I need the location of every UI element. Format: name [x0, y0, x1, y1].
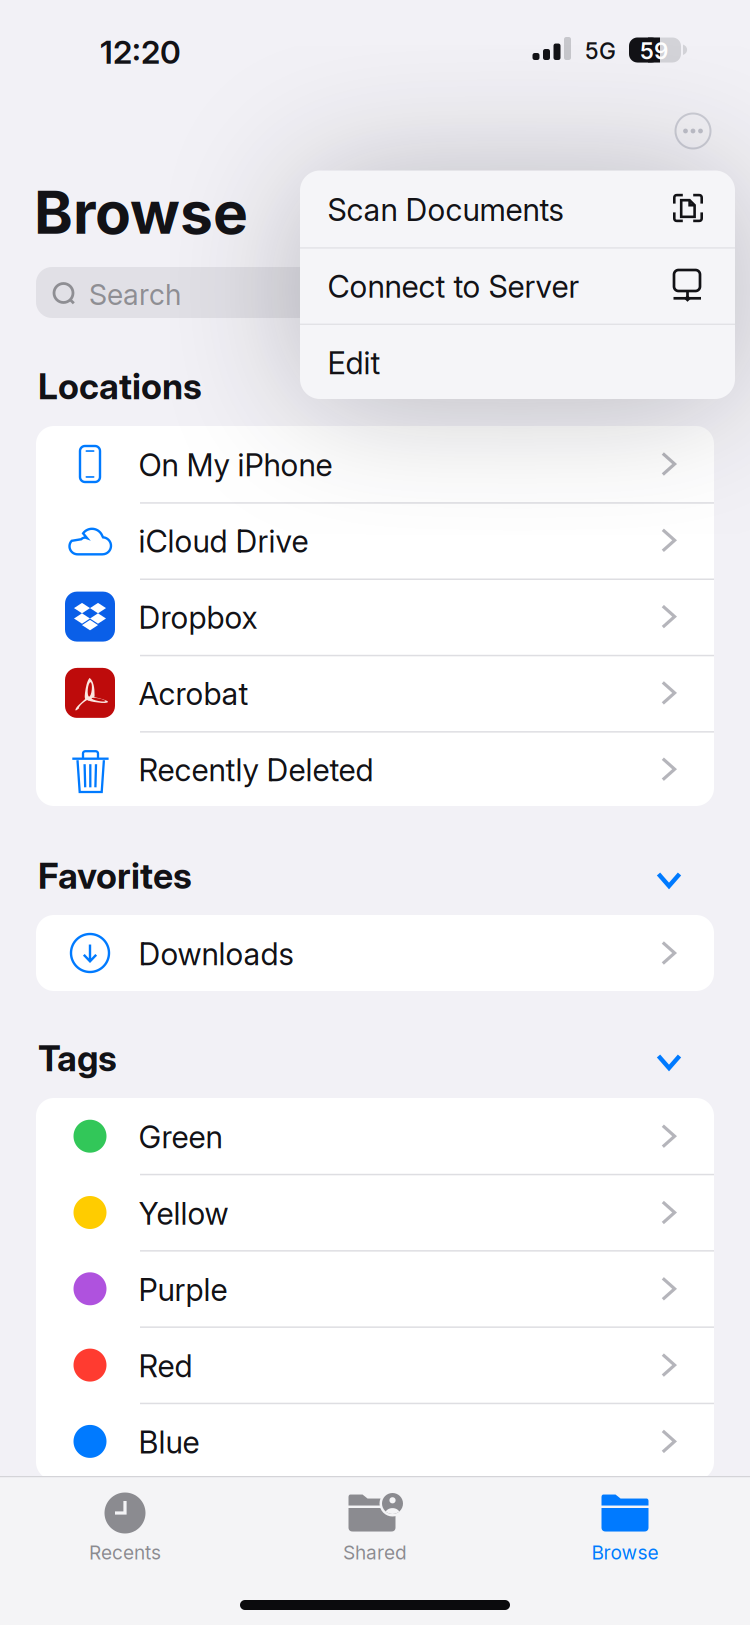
staticText: 59	[640, 37, 668, 65]
button[interactable]: Connect to Server	[0, 0, 750, 1625]
button[interactable]: Purple	[0, 0, 750, 1625]
button[interactable]: Red	[0, 0, 750, 1625]
staticText: 5G	[585, 37, 616, 65]
button[interactable]: Shared	[0, 0, 750, 1625]
staticText: Connect to Server	[327, 268, 579, 305]
button[interactable]: iCloud Drive	[0, 0, 750, 1625]
staticText: Search	[89, 277, 181, 312]
staticText: Browse	[591, 1541, 658, 1564]
button[interactable]: Blue	[0, 0, 750, 1625]
staticText: Dropbox	[138, 599, 257, 636]
button[interactable]: Recently Deleted	[0, 0, 750, 1625]
button[interactable]: Edit	[0, 0, 750, 1625]
staticText: Edit	[327, 345, 380, 382]
staticText: Purple	[138, 1271, 227, 1308]
staticText: Downloads	[138, 935, 293, 972]
staticText: Favorites	[38, 855, 192, 897]
button[interactable]: Acrobat	[0, 0, 750, 1625]
button[interactable]: Recents	[0, 0, 750, 1625]
staticText: Yellow	[138, 1195, 228, 1232]
staticText: Browse	[34, 177, 248, 248]
button[interactable]: Collapse Tags	[0, 0, 750, 1625]
staticText: Scan Documents	[327, 191, 563, 228]
staticText: Red	[138, 1347, 192, 1385]
button[interactable]: Dropbox	[0, 0, 750, 1625]
staticText: Locations	[38, 365, 202, 408]
staticText: Green	[138, 1119, 222, 1156]
staticText: Shared	[343, 1541, 407, 1564]
staticText: Blue	[138, 1424, 199, 1461]
button[interactable]: More	[0, 0, 750, 1625]
staticText: 12:20	[100, 33, 181, 71]
staticText: Acrobat	[138, 675, 248, 712]
button[interactable]: Green	[0, 0, 750, 1625]
staticText: Recents	[89, 1541, 161, 1564]
button[interactable]: Search	[0, 0, 750, 1625]
staticText: Tags	[38, 1037, 117, 1080]
button[interactable]: Downloads	[0, 0, 750, 1625]
button[interactable]: Yellow	[0, 0, 750, 1625]
staticText: iCloud Drive	[138, 523, 308, 560]
staticText: Recently Deleted	[138, 752, 373, 789]
button[interactable]: Collapse Favorites	[0, 0, 750, 1625]
button[interactable]: Browse	[0, 0, 750, 1625]
staticText: On My iPhone	[138, 446, 332, 483]
button[interactable]: On My iPhone	[0, 0, 750, 1625]
button[interactable]: Scan Documents	[0, 0, 750, 1625]
